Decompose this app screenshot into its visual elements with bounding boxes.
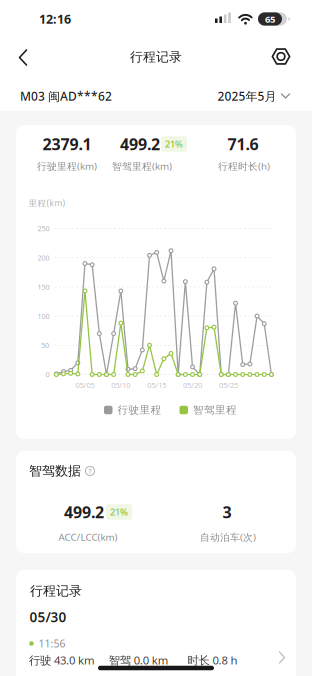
staticText: 200 xyxy=(37,253,49,263)
staticText: 时长 0.8 h xyxy=(187,652,237,668)
staticText: 行驶里程 xyxy=(117,403,161,417)
staticText: 50 xyxy=(41,340,49,350)
button[interactable]: M03 闽AD***62 xyxy=(20,88,112,104)
staticText: 智驾数据 xyxy=(29,463,81,479)
staticText: 行程记录 xyxy=(130,49,182,65)
staticText: M03 闽AD***62 xyxy=(20,88,112,104)
button[interactable]: 智驾数据说明 xyxy=(85,466,95,476)
staticText: 05/20 xyxy=(183,380,202,390)
staticText: 65 xyxy=(265,12,275,25)
staticText: 11:56 xyxy=(38,636,65,651)
staticText: 05/15 xyxy=(147,380,166,390)
staticText: 智驾 0.0 km xyxy=(109,652,169,668)
staticText: 行程记录 xyxy=(30,583,82,599)
staticText: 499.2 xyxy=(64,501,104,523)
staticText: 0 xyxy=(45,370,49,379)
staticText: 05/05 xyxy=(75,380,94,390)
staticText: 12:16 xyxy=(39,10,71,27)
staticText: 自动泊车(次) xyxy=(200,530,256,544)
staticText: 100 xyxy=(37,311,49,321)
button[interactable]: 11:56 xyxy=(16,632,296,672)
staticText: 里程(km) xyxy=(28,197,65,209)
staticText: 499.2 xyxy=(120,133,160,155)
staticText: 71.6 xyxy=(227,133,258,155)
staticText: 21% xyxy=(110,506,128,518)
staticText: 智驾里程(km) xyxy=(112,159,172,173)
button[interactable]: 2025年5月 xyxy=(217,88,290,104)
staticText: 行驶 43.0 km xyxy=(29,652,95,668)
staticText: 150 xyxy=(37,282,49,292)
staticText: 21% xyxy=(165,138,183,150)
staticText: 250 xyxy=(37,224,49,233)
staticText: ACC/LCC(km) xyxy=(58,530,117,544)
staticText: 2379.1 xyxy=(42,133,91,155)
staticText: ? xyxy=(88,466,91,476)
staticText: 3 xyxy=(222,501,231,523)
staticText: 05/10 xyxy=(111,380,130,390)
staticText: 05/30 xyxy=(29,608,66,626)
staticText: 2025年5月 xyxy=(217,88,276,104)
staticText: 智驾里程 xyxy=(193,403,237,417)
staticText: 行程时长(h) xyxy=(218,159,270,173)
button[interactable]: Settings xyxy=(266,41,296,71)
staticText: 行驶里程(km) xyxy=(37,159,97,173)
button[interactable]: Back xyxy=(8,42,38,72)
staticText: 05/25 xyxy=(219,380,238,390)
